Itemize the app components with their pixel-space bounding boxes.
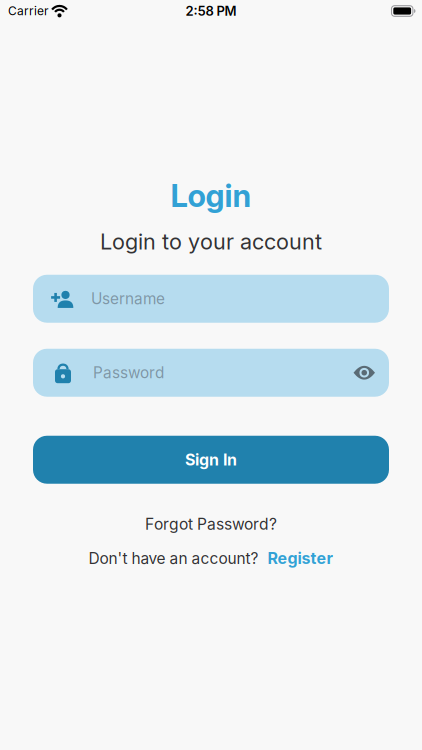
button[interactable]: Forgot Password? [145, 515, 277, 534]
staticText: Register [267, 549, 333, 568]
button[interactable]: Show password [353, 364, 375, 381]
button[interactable]: Password [33, 349, 389, 397]
staticText: Sign In [185, 450, 237, 469]
staticText: Carrier [8, 4, 49, 18]
staticText: Don't have an account? [88, 549, 258, 568]
staticText: Password [93, 363, 164, 382]
button[interactable]: Sign In [33, 436, 389, 484]
staticText: 2:58 PM [185, 3, 236, 19]
staticText: Login [170, 177, 251, 214]
staticText: Login to your account [100, 228, 322, 255]
button[interactable]: Username [33, 275, 389, 323]
staticText: Username [91, 289, 165, 308]
staticText: Forgot Password? [145, 515, 277, 534]
button[interactable]: Register [267, 549, 333, 568]
